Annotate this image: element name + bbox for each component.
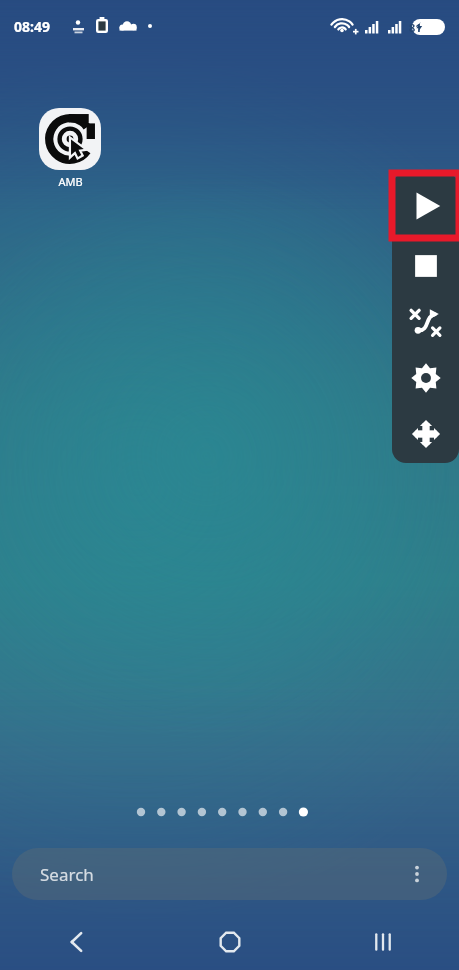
staticText: 81 xyxy=(409,20,422,35)
button[interactable]: More options xyxy=(395,852,439,896)
button[interactable]: Stop xyxy=(392,238,459,294)
button[interactable]: Home xyxy=(153,914,306,970)
staticText: 08:49 xyxy=(14,17,50,36)
button[interactable]: Settings xyxy=(392,350,459,406)
staticText: AMB xyxy=(58,174,83,189)
button[interactable]: Recent apps xyxy=(306,914,459,970)
button[interactable]: Play xyxy=(392,173,459,238)
button[interactable]: Search xyxy=(12,848,447,900)
button[interactable]: Move xyxy=(392,406,459,462)
button[interactable]: Back xyxy=(0,914,153,970)
button[interactable]: Route xyxy=(392,294,459,350)
staticText: Search xyxy=(40,863,94,886)
button[interactable]: AMB xyxy=(30,108,110,189)
